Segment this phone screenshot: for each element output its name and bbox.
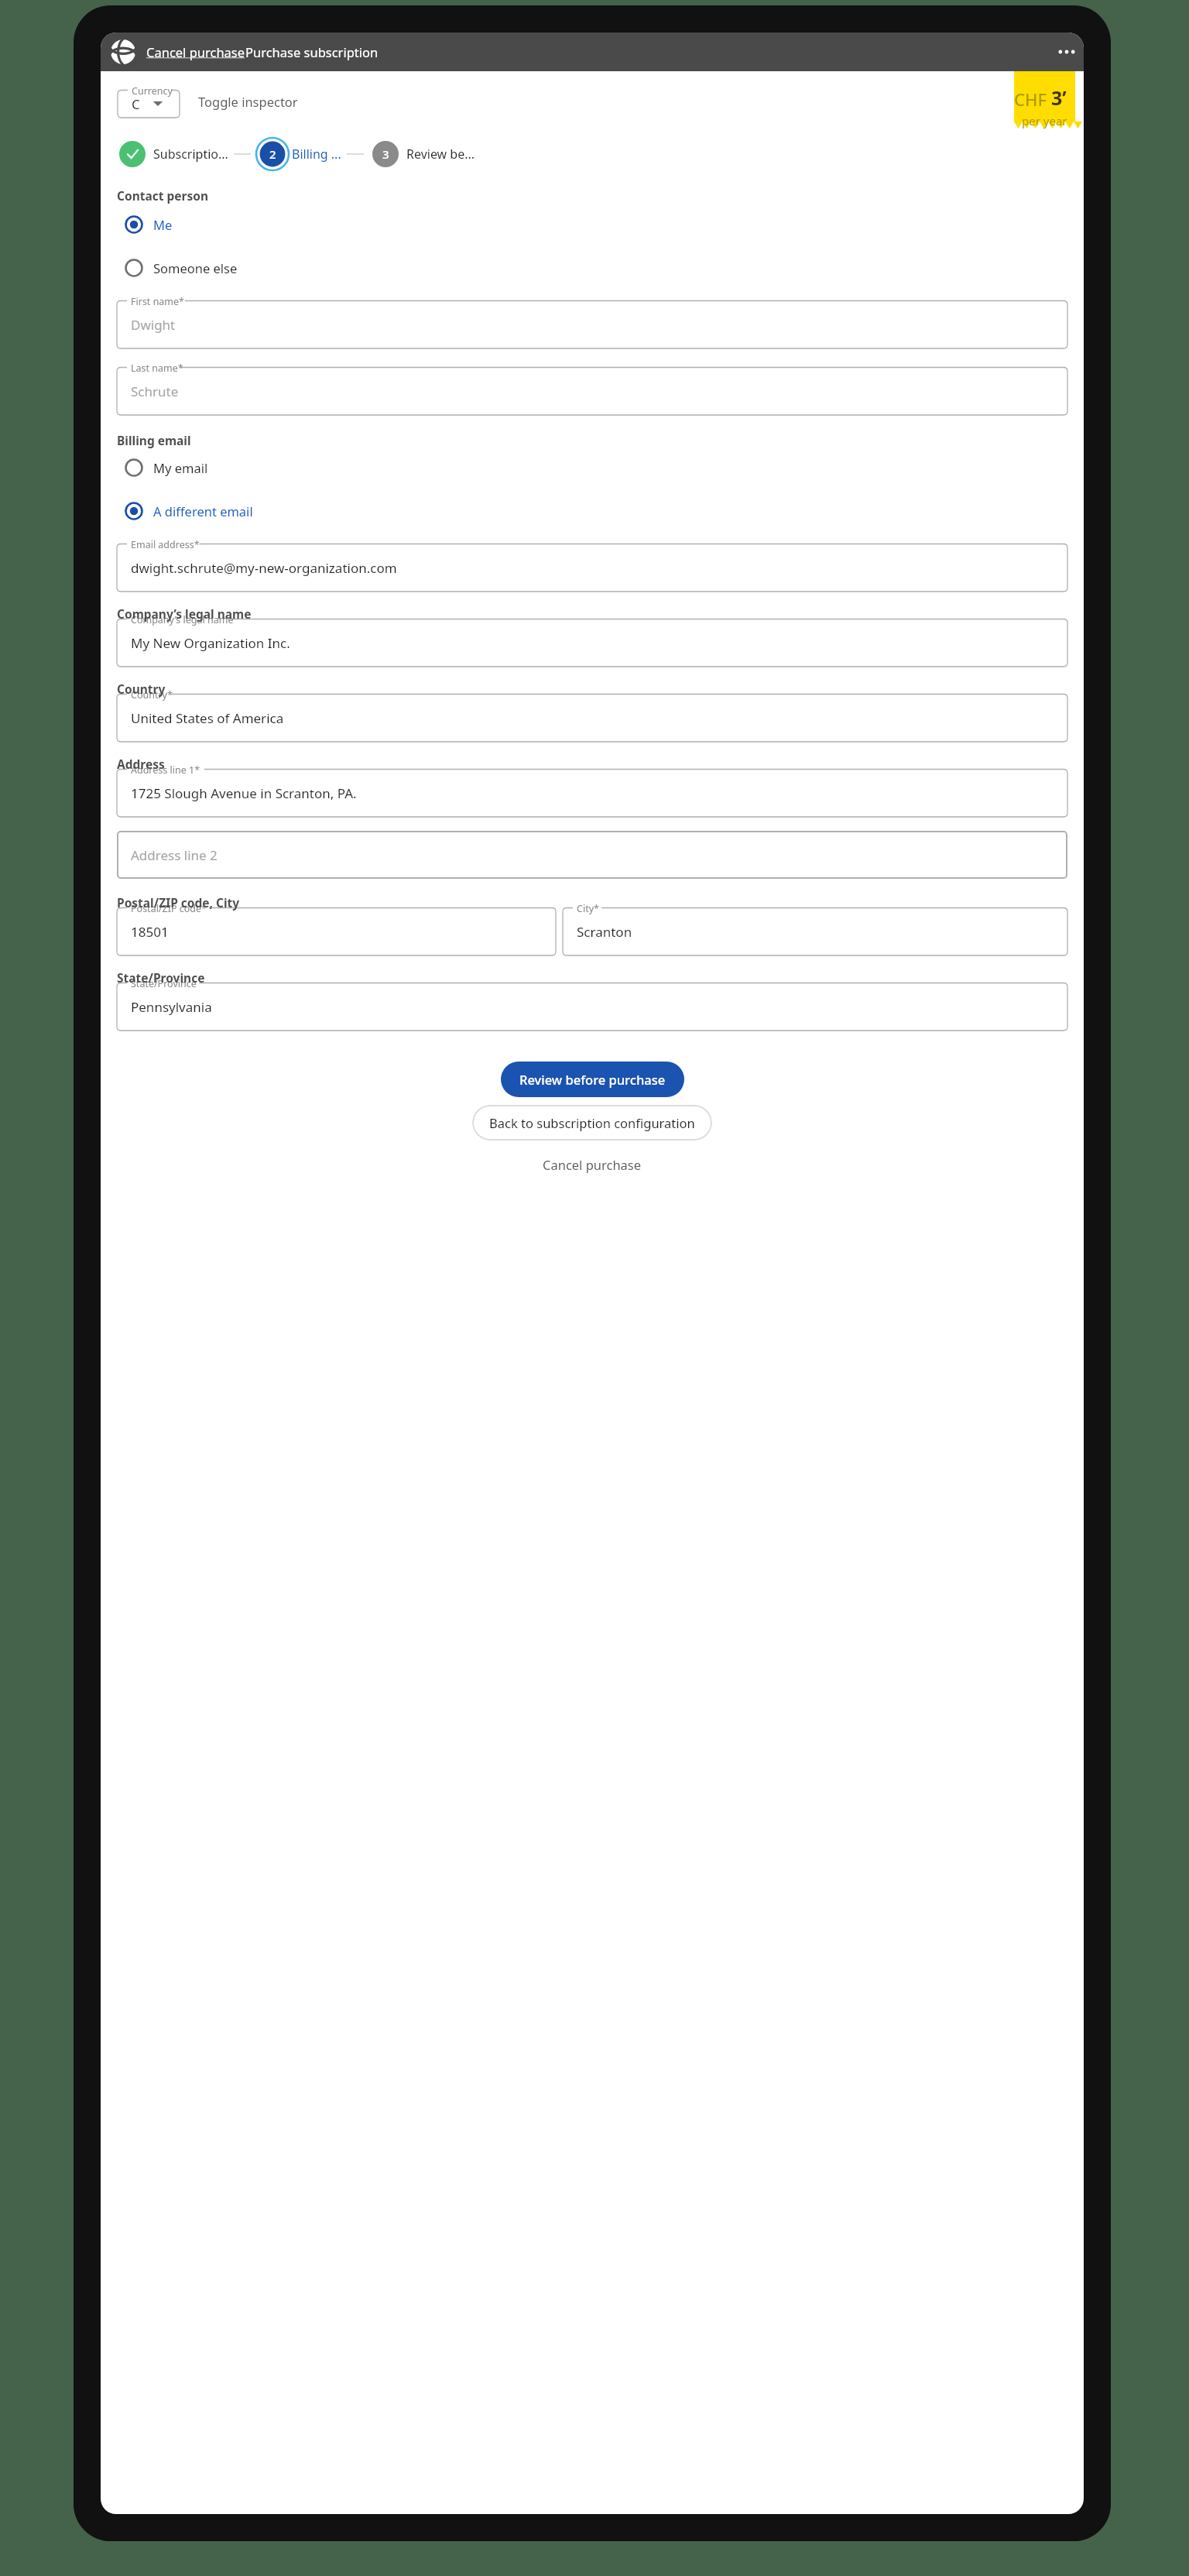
staticText: Scranton xyxy=(577,923,632,941)
button[interactable]: Address line 1* xyxy=(117,764,1067,817)
staticText: Country xyxy=(117,681,166,697)
button[interactable]: Cancel purchase xyxy=(532,1150,653,1179)
button[interactable]: Currency xyxy=(118,85,180,118)
staticText: Billing email xyxy=(117,432,191,448)
button[interactable]: Address line 2 xyxy=(117,831,1067,879)
staticText: Contact person xyxy=(117,187,209,204)
button[interactable]: Cancel purchase xyxy=(146,43,245,60)
button[interactable]: My email xyxy=(117,451,1084,485)
staticText: 3’528 xyxy=(1051,84,1075,111)
staticText: CHF xyxy=(1014,87,1051,111)
staticText: 2 xyxy=(269,146,276,162)
staticText: My email xyxy=(153,459,208,476)
button[interactable]: Back to subscription configuration xyxy=(472,1105,712,1141)
staticText: Dwight xyxy=(131,316,176,334)
staticText: Back to subscription configuration xyxy=(489,1114,695,1131)
staticText: Review be... xyxy=(406,146,475,163)
button[interactable]: Me xyxy=(117,208,1084,242)
button[interactable]: Postal/ZIP code* xyxy=(117,903,556,955)
staticText: United States of America xyxy=(131,709,284,727)
staticText: My New Organization Inc. xyxy=(131,634,290,652)
staticText: Someone else xyxy=(153,259,238,276)
staticText: 1725 Slough Avenue in Scranton, PA. xyxy=(131,784,357,802)
staticText: Address line 1* xyxy=(131,763,200,777)
staticText: Review before purchase xyxy=(519,1071,666,1088)
button[interactable]: Company’s legal name xyxy=(117,614,1067,667)
button[interactable]: Review before purchase xyxy=(501,1062,684,1097)
staticText: Postal/ZIP code* xyxy=(131,902,207,915)
staticText: Subscriptio... xyxy=(153,146,228,163)
button[interactable]: 2 xyxy=(256,138,341,170)
button[interactable]: Last name* xyxy=(117,362,1067,415)
button[interactable]: More options xyxy=(1050,35,1084,69)
staticText: State/Province xyxy=(131,977,197,990)
staticText: Address xyxy=(117,756,165,772)
staticText: City* xyxy=(577,902,599,915)
button[interactable]: State/Province xyxy=(117,978,1067,1031)
staticText: Postal/ZIP code, City xyxy=(117,894,240,911)
staticText: Company’s legal name xyxy=(117,605,252,622)
staticText: Purchase subscription xyxy=(245,43,379,60)
staticText: Last name* xyxy=(131,362,183,375)
staticText: dwight.schrute@my-new-organization.com xyxy=(131,559,397,577)
button[interactable]: Toggle inspector xyxy=(198,93,298,110)
staticText: Currency xyxy=(132,84,173,98)
other: Open currency menu xyxy=(150,96,166,111)
button[interactable]: Subscriptio... xyxy=(116,138,228,170)
staticText: CHF xyxy=(132,95,142,113)
staticText: Cancel purchase xyxy=(543,1156,642,1173)
staticText: Email address* xyxy=(131,538,200,551)
staticText: Billing ... xyxy=(292,146,341,163)
staticText: Company’s legal name xyxy=(131,613,234,626)
staticText: per year xyxy=(1022,113,1067,129)
button[interactable]: 3 xyxy=(369,138,475,170)
staticText: 3 xyxy=(382,146,389,162)
staticText: Country* xyxy=(131,688,173,701)
staticText: First name* xyxy=(131,295,184,308)
staticText: Address line 2 xyxy=(131,846,218,864)
staticText: 18501 xyxy=(131,923,169,941)
button[interactable]: Country* xyxy=(117,689,1067,742)
staticText: Pennsylvania xyxy=(131,998,212,1016)
button[interactable]: First name* xyxy=(117,296,1067,348)
button[interactable]: City* xyxy=(563,903,1067,955)
button[interactable]: A different email xyxy=(117,494,1084,528)
staticText: A different email xyxy=(153,503,253,520)
staticText: Schrute xyxy=(131,382,179,400)
staticText: State/Province xyxy=(117,969,205,986)
staticText: Me xyxy=(153,216,173,233)
button[interactable]: Email address* xyxy=(117,539,1067,592)
button[interactable]: Someone else xyxy=(117,251,1084,285)
